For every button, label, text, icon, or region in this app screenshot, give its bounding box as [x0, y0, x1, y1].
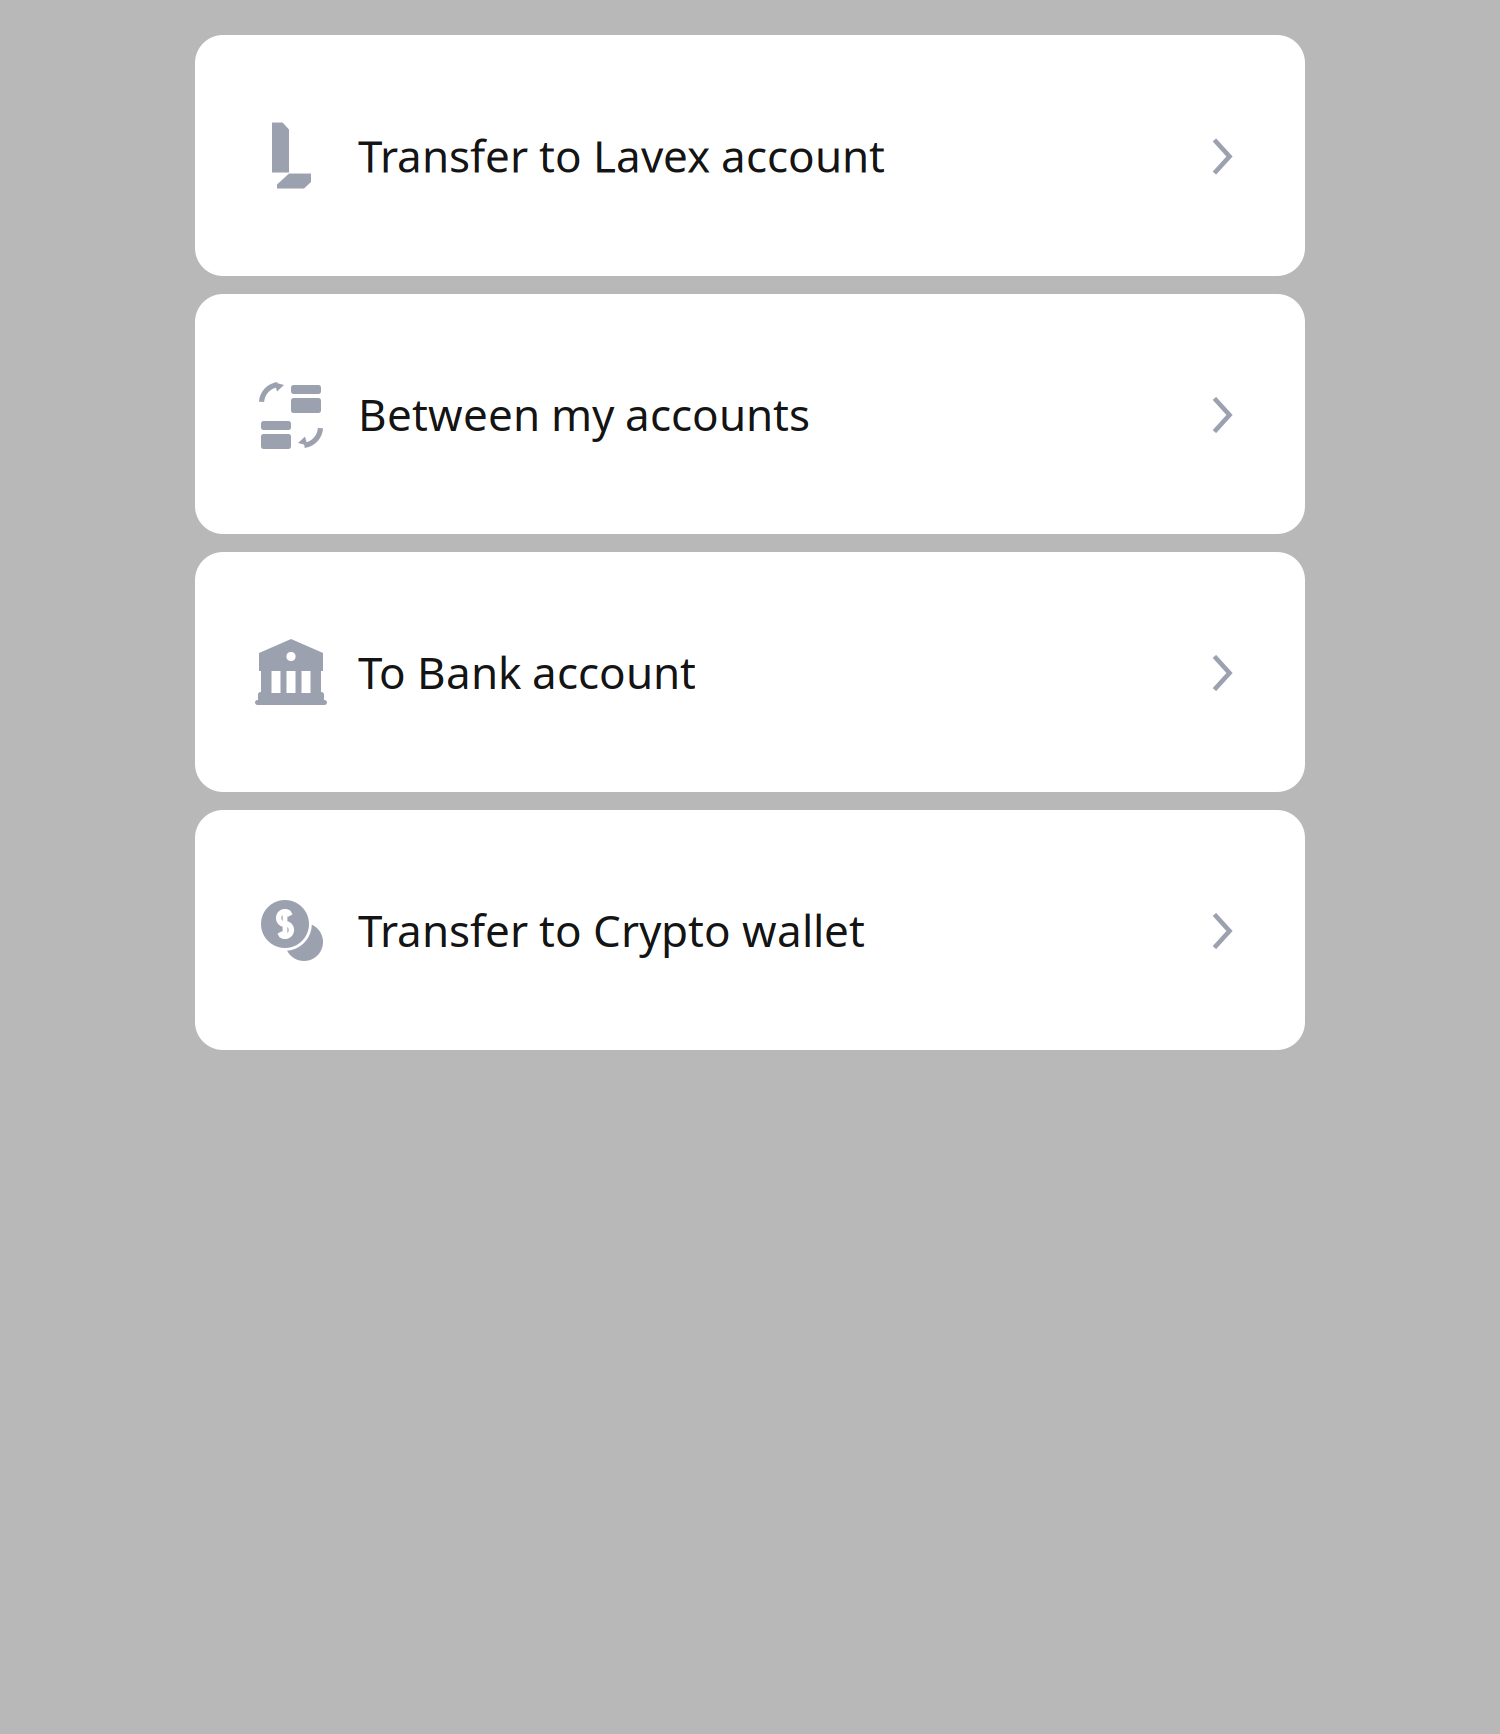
button[interactable]: Between my accounts [195, 294, 1305, 534]
staticText: Transfer to Lavex account [358, 126, 885, 185]
button[interactable]: To Bank account [195, 552, 1305, 792]
staticText: Between my accounts [358, 385, 810, 443]
button[interactable]: Transfer to Lavex account [195, 35, 1305, 276]
button[interactable]: Transfer to Crypto wallet [195, 810, 1305, 1050]
staticText: To Bank account [358, 643, 696, 701]
staticText: Transfer to Crypto wallet [358, 901, 865, 959]
